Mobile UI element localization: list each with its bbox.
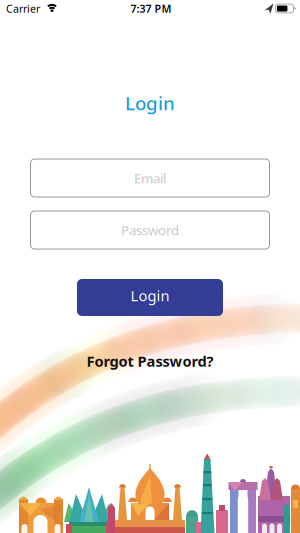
button[interactable]: Email [30,159,269,197]
button[interactable]: Login [77,279,223,316]
staticText: Login [130,286,169,305]
button[interactable]: Forgot Password? [86,351,213,371]
staticText: Forgot Password? [86,351,213,371]
staticText: Carrier [6,1,40,16]
staticText: Password [121,221,179,239]
button[interactable]: Password [30,211,269,249]
staticText: Login [125,91,175,115]
staticText: Email [134,169,166,187]
staticText: 7:37 PM [130,1,171,16]
